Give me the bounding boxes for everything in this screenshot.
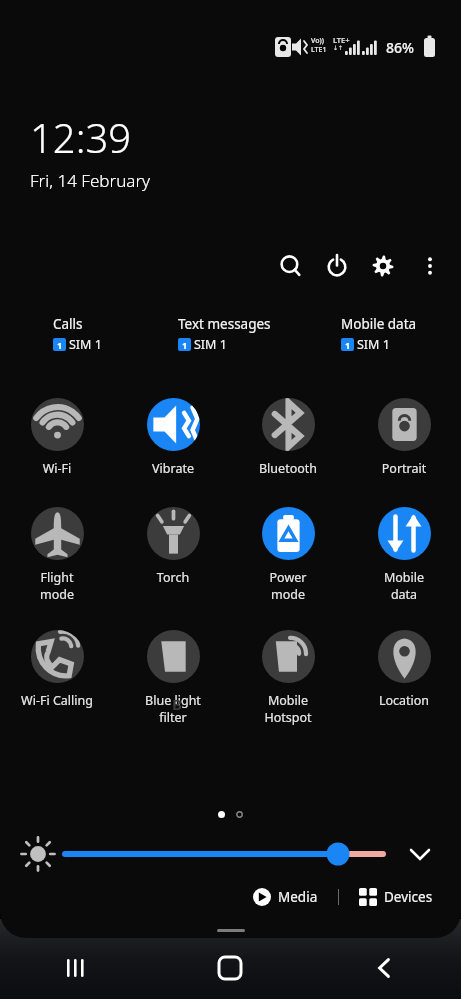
button[interactable]: Torch [123, 507, 223, 586]
button[interactable]: Home [200, 938, 260, 998]
button[interactable]: Power mode [238, 507, 338, 602]
button[interactable]: Wi-Fi [7, 398, 107, 477]
staticText: 1 [182, 339, 188, 351]
staticText: Mobile data [357, 569, 451, 602]
staticText: Media [278, 888, 318, 906]
button[interactable]: Mobile data [354, 507, 454, 602]
button[interactable]: Search [272, 247, 310, 285]
staticText: 86% [386, 38, 414, 57]
button[interactable]: Portrait [354, 398, 454, 477]
button[interactable]: Text messages [178, 315, 271, 353]
button[interactable]: Vibrate [123, 398, 223, 477]
staticText: Flight mode [10, 569, 104, 602]
staticText: Torch [126, 569, 220, 586]
staticText: Location [357, 692, 451, 709]
button[interactable]: Power off [318, 247, 356, 285]
button[interactable]: Bluetooth [238, 398, 338, 477]
button[interactable]: Mobile Hotspot [238, 630, 338, 725]
staticText: Fri, 14 February [30, 169, 151, 192]
staticText: 1 [345, 339, 351, 351]
staticText: Devices [384, 888, 433, 906]
button[interactable]: Wi-Fi Calling [7, 630, 107, 709]
staticText: Wi-Fi [10, 460, 104, 477]
staticText: ↓↑ [333, 44, 344, 51]
button[interactable]: Devices [353, 884, 439, 910]
staticText: Portrait [357, 460, 451, 477]
staticText: Text messages [178, 315, 271, 333]
button[interactable]: More options [410, 246, 450, 286]
button[interactable]: Calls [53, 315, 102, 353]
button[interactable]: Mobile data [341, 315, 417, 353]
staticText: Blue light filter [126, 692, 220, 725]
staticText: Vo)) [311, 36, 324, 46]
staticText: Bluetooth [241, 460, 335, 477]
staticText: Mobile Hotspot [241, 692, 335, 725]
button[interactable]: Blue light filter [123, 630, 223, 725]
staticText: B [172, 694, 182, 714]
button[interactable]: Media [247, 884, 324, 910]
staticText: 12:39 [30, 110, 132, 164]
staticText: SIM 1 [194, 336, 227, 353]
staticText: Vibrate [126, 460, 220, 477]
button[interactable]: Settings [364, 247, 402, 285]
staticText: LTE1 [311, 45, 327, 55]
staticText: Power mode [241, 569, 335, 602]
button[interactable]: Back [354, 938, 414, 998]
button[interactable]: Flight mode [7, 507, 107, 602]
staticText: Calls [53, 315, 83, 333]
staticText: Mobile data [341, 315, 417, 333]
staticText: Wi-Fi Calling [10, 692, 104, 709]
button[interactable]: Recent apps [47, 938, 107, 998]
staticText: 1 [57, 339, 63, 351]
button[interactable]: Location [354, 630, 454, 709]
staticText: SIM 1 [357, 336, 390, 353]
button[interactable]: Expand brightness [398, 833, 442, 875]
staticText: LTE+ [333, 35, 350, 45]
staticText: SIM 1 [69, 336, 102, 353]
